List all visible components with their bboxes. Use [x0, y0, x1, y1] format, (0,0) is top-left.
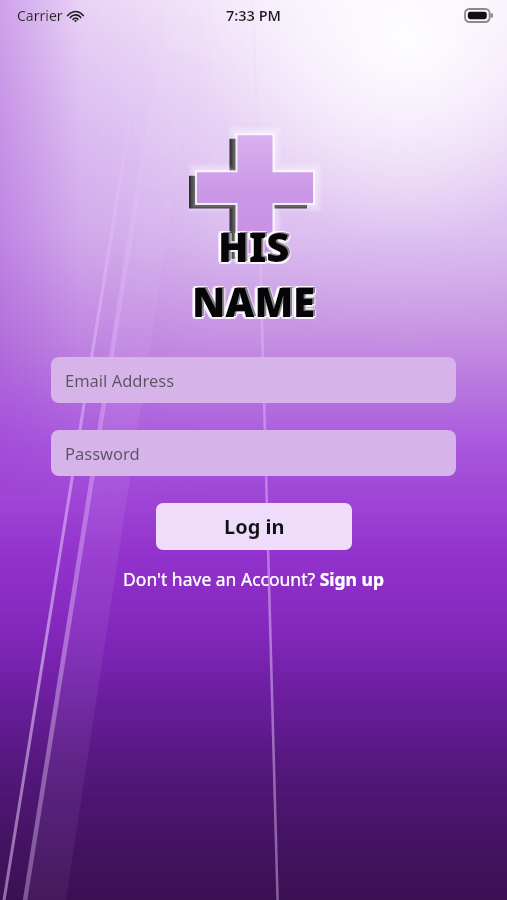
button[interactable]: Log in: [156, 503, 352, 550]
staticText: HIS: [218, 219, 290, 273]
staticText: HIS: [216, 217, 288, 271]
staticText: NAME: [192, 276, 316, 330]
staticText: NAME: [194, 276, 318, 330]
staticText: HIS: [221, 219, 293, 273]
staticText: HIS: [215, 219, 287, 273]
staticText: HIS: [220, 218, 292, 272]
staticText: HIS: [216, 219, 288, 273]
staticText: NAME: [195, 274, 319, 328]
staticText: 7:33 PM: [226, 5, 282, 25]
staticText: NAME: [192, 272, 316, 326]
staticText: NAME: [190, 274, 314, 328]
staticText: NAME: [194, 272, 318, 326]
button[interactable]: Password: [51, 430, 456, 476]
staticText: Don't have an Account? Sign up: [123, 567, 384, 591]
staticText: Password: [65, 442, 140, 464]
staticText: NAME: [194, 274, 318, 328]
staticText: NAME: [190, 272, 314, 326]
staticText: NAME: [190, 276, 314, 330]
staticText: HIS: [220, 221, 292, 275]
staticText: HIS: [218, 217, 290, 271]
button[interactable]: Email Address: [51, 357, 456, 403]
staticText: HIS: [216, 221, 288, 275]
staticText: Carrier: [17, 6, 63, 25]
staticText: NAME: [194, 273, 318, 327]
staticText: Log in: [224, 513, 285, 540]
staticText: HIS: [220, 217, 292, 271]
staticText: Email Address: [65, 369, 175, 391]
staticText: NAME: [192, 274, 316, 328]
staticText: HIS: [218, 221, 290, 275]
button[interactable]: Don't have an Account? Sign up: [0, 563, 507, 595]
staticText: HIS: [220, 219, 292, 273]
staticText: NAME: [189, 274, 313, 328]
